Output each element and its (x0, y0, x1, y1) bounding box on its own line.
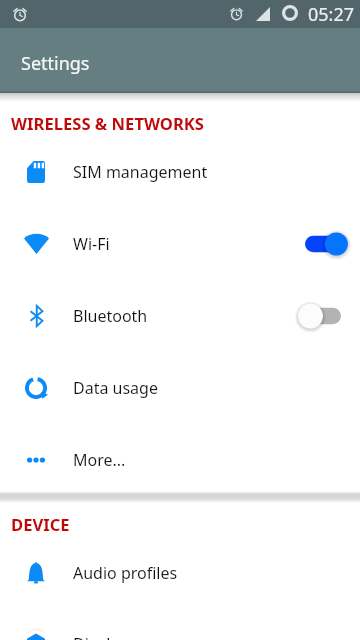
staticText: Wi-Fi (73, 233, 110, 255)
staticText: Data usage (73, 377, 158, 399)
button[interactable]: Data usage (0, 352, 360, 424)
staticText: SIM management (73, 161, 208, 183)
button[interactable]: Wi-Fi (0, 208, 360, 280)
staticText: Display (73, 633, 128, 640)
button[interactable]: Bluetooth (0, 280, 360, 352)
staticText: 05:27 (308, 2, 355, 27)
button[interactable]: Display (0, 608, 360, 640)
staticText: DEVICE (11, 513, 70, 536)
button[interactable]: Switch off (300, 299, 352, 333)
button[interactable]: SIM management (0, 136, 360, 208)
staticText: Audio profiles (73, 562, 178, 584)
staticText: WIRELESS & NETWORKS (11, 112, 205, 135)
staticText: More... (73, 449, 126, 471)
staticText: Bluetooth (73, 305, 148, 327)
button[interactable]: Audio profiles (0, 537, 360, 609)
button[interactable]: Switch on (300, 227, 352, 261)
staticText: Settings (21, 51, 90, 76)
button[interactable]: More... (0, 424, 360, 496)
